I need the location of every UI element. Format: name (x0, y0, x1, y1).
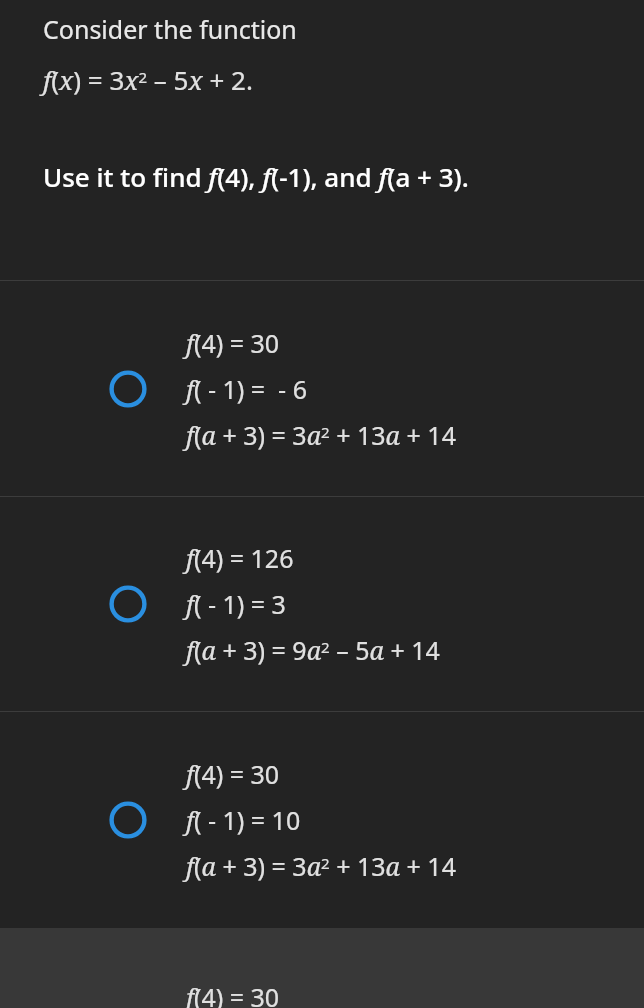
staticText: f(a + 3) = 3a2 + 13a + 14 (186, 418, 456, 452)
button[interactable]: Select answer option (0, 497, 644, 711)
staticText: f(a + 3) = 3a2 + 13a + 14 (186, 849, 456, 883)
staticText: f( - 1) = - 6 (186, 372, 307, 406)
button[interactable]: Select answer option (0, 281, 644, 496)
staticText: f(a + 3) = 9a2 – 5a + 14 (186, 633, 440, 667)
staticText: Use it to find f(4), f(-1), and f(a + 3)… (43, 159, 469, 194)
staticText: f(4) = 30 (186, 326, 280, 360)
button[interactable]: Select answer option (0, 712, 644, 928)
staticText: f(4) = 126 (186, 541, 294, 575)
staticText: f( - 1) = 3 (186, 587, 286, 621)
other: Select answer option (109, 801, 147, 839)
staticText: f( - 1) = 10 (186, 803, 301, 837)
button[interactable]: f(4) = 30 (0, 928, 644, 1008)
staticText: f(4) = 30 (186, 980, 280, 1008)
staticText: f(4) = 30 (186, 757, 280, 791)
other: Select answer option (109, 370, 147, 408)
other: Select answer option (109, 585, 147, 623)
staticText: f(x) = 3x2 – 5x + 2. (43, 62, 253, 97)
staticText: Consider the function (43, 12, 297, 46)
